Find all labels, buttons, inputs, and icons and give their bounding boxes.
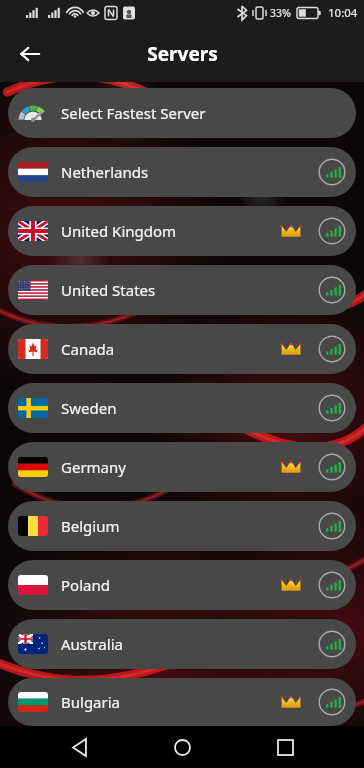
staticText: United Kingdom [61, 221, 177, 241]
staticText: Poland [61, 575, 110, 595]
staticText: Australia [61, 634, 123, 654]
staticText: 10:04 [328, 5, 358, 21]
staticText: Bulgaria [61, 692, 121, 712]
staticText: Belgium [61, 516, 120, 536]
button[interactable]: Back [10, 34, 50, 74]
button[interactable]: United Kingdom [8, 206, 356, 256]
staticText: Servers [147, 41, 218, 67]
staticText: Germany [61, 457, 126, 477]
button[interactable]: Sweden [8, 383, 356, 433]
staticText: Canada [61, 339, 115, 359]
button[interactable]: Australia [8, 619, 356, 669]
button[interactable]: United States [8, 265, 356, 315]
button[interactable]: Home [158, 726, 206, 768]
button[interactable]: Select Fastest Server [8, 88, 356, 138]
button[interactable]: Back [55, 726, 103, 768]
staticText: Select Fastest Server [61, 103, 206, 123]
button[interactable]: Belgium [8, 501, 356, 551]
button[interactable]: Germany [8, 442, 356, 492]
staticText: 33% [270, 6, 291, 20]
staticText: Netherlands [61, 162, 149, 182]
staticText: United States [61, 280, 156, 300]
button[interactable]: Recent apps [261, 726, 309, 768]
staticText: Sweden [61, 398, 117, 418]
button[interactable]: Poland [8, 560, 356, 610]
button[interactable]: Netherlands [8, 147, 356, 197]
button[interactable]: Canada [8, 324, 356, 374]
button[interactable]: Bulgaria [8, 678, 356, 726]
